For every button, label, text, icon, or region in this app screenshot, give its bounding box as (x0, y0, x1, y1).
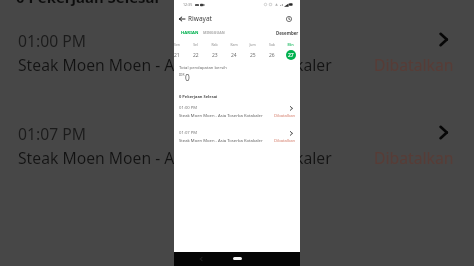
staticText: Dibatalkan (274, 138, 296, 144)
staticText: MINGGUAN (203, 30, 225, 35)
staticText: Riwayat (188, 14, 213, 23)
button[interactable]: Sel (186, 42, 205, 62)
staticText: 0 (185, 72, 190, 83)
staticText: 26 (269, 52, 275, 59)
button[interactable]: 01:07 PM (174, 129, 300, 145)
staticText: Total pendapatan bersih (179, 65, 227, 71)
staticText: Steak Moen Moen - Asia Toserba Kotakaler (18, 54, 332, 75)
staticText: 0 Pekerjaan Selesai (16, 0, 159, 7)
staticText: Min (287, 42, 294, 47)
staticText: Jum (249, 42, 256, 47)
staticText: Sen (174, 42, 180, 47)
button[interactable]: Sen (167, 42, 186, 62)
button[interactable]: Sab (262, 42, 281, 62)
staticText: Steak Moen Moen - Asia Toserba Kotakaler (179, 113, 263, 119)
staticText: Steak Moen Moen - Asia Toserba Kotakaler (18, 147, 332, 168)
staticText: Dibatalkan (274, 113, 296, 119)
button[interactable]: MINGGUAN (202, 28, 226, 37)
staticText: 25 (250, 52, 256, 59)
staticText: HARIAN (181, 30, 199, 36)
staticText: Desember (276, 30, 299, 36)
button[interactable]: Back (176, 13, 187, 24)
staticText: 01:00 PM (179, 105, 198, 111)
staticText: 22 (193, 52, 199, 59)
staticText: 0 Pekerjaan Selesai (179, 94, 218, 99)
staticText: Rab (211, 42, 218, 47)
staticText: 01:07 PM (179, 130, 198, 136)
staticText: 12:35 (183, 2, 193, 7)
button[interactable]: Info (283, 13, 294, 24)
staticText: Steak Moen Moen - Asia Toserba Kotakaler (179, 138, 263, 144)
staticText: 23 (212, 52, 218, 59)
button[interactable]: HARIAN (180, 28, 200, 38)
staticText: Dibatalkan (374, 54, 454, 75)
staticText: Dibatalkan (374, 147, 454, 168)
staticText: 24 (231, 52, 237, 59)
staticText: 01:07 PM (18, 123, 86, 144)
staticText: 21 (174, 52, 180, 59)
button[interactable]: Kam (224, 42, 243, 62)
staticText: Sel (193, 42, 198, 47)
staticText: Kam (230, 42, 238, 47)
button[interactable]: Jum (243, 42, 262, 62)
staticText: Sab (269, 42, 275, 47)
staticText: 01:00 PM (18, 30, 86, 51)
staticText: IDR (179, 73, 185, 77)
button[interactable]: 01:00 PM (174, 104, 300, 120)
button[interactable]: Rab (205, 42, 224, 62)
button[interactable]: Min (281, 42, 300, 62)
staticText: 27 (288, 52, 294, 59)
